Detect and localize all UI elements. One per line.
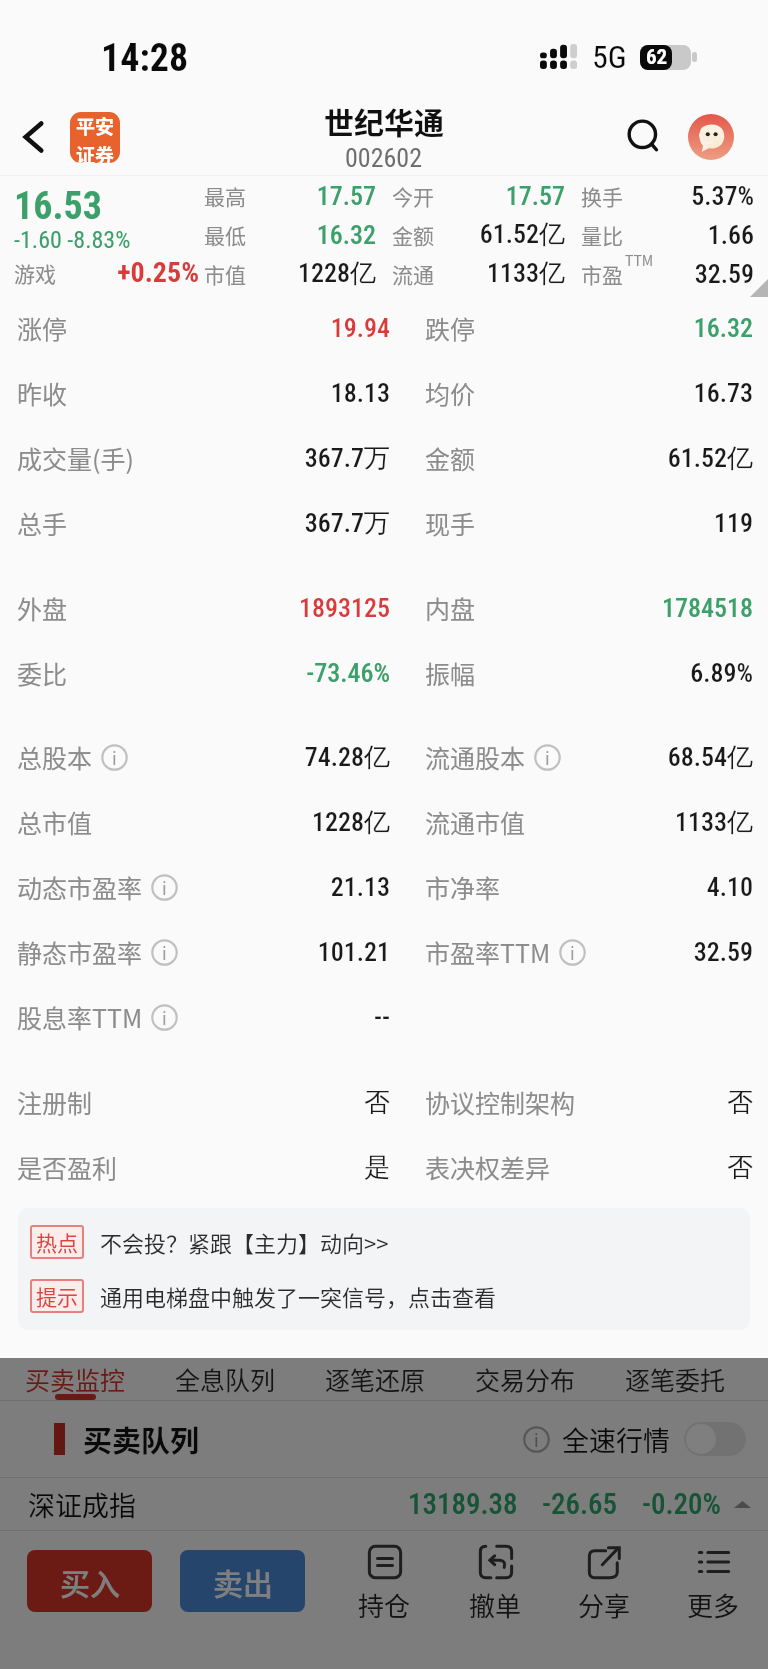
staticText: 32.59 <box>586 937 753 967</box>
staticText: 金额 <box>392 220 434 250</box>
staticText: 是否盈利 <box>17 1149 118 1185</box>
staticText: 涨停 <box>17 310 68 346</box>
staticText: 1.66 <box>623 220 754 250</box>
staticText: 全速行情 <box>562 1420 670 1459</box>
button[interactable]: 持仓 <box>342 1543 426 1625</box>
button[interactable]: 买卖监控 <box>0 1358 150 1401</box>
button[interactable]: 提示 <box>18 1279 750 1313</box>
staticText: i <box>545 745 550 770</box>
staticText: i <box>534 1427 539 1452</box>
button[interactable]: 全息队列 <box>150 1358 300 1401</box>
button[interactable]: 逐笔还原 <box>300 1358 450 1401</box>
staticText: 内盘 <box>425 590 476 626</box>
staticText: 市盈 <box>581 259 623 289</box>
button[interactable]: Toggle full speed quotes <box>684 1422 746 1456</box>
staticText: 16.53 <box>14 184 102 229</box>
staticText: -- <box>178 1002 390 1032</box>
staticText: 市净率 <box>425 869 501 905</box>
staticText: 18.13 <box>68 378 390 408</box>
button[interactable]: Profile <box>688 114 734 160</box>
staticText: 总股本 <box>17 739 93 775</box>
staticText: 协议控制架构 <box>425 1084 576 1120</box>
button[interactable]: 撤单 <box>453 1543 537 1625</box>
staticText: 否 <box>93 1086 390 1119</box>
staticText: 68.54亿 <box>561 741 753 774</box>
staticText: 61.52亿 <box>476 442 753 475</box>
button[interactable]: Search <box>623 115 667 159</box>
staticText: 101.21 <box>178 937 390 967</box>
staticText: 分享 <box>578 1586 631 1624</box>
staticText: 表决权差异 <box>425 1149 551 1185</box>
button[interactable]: Back <box>8 111 60 163</box>
staticText: 367.7万 <box>134 442 390 475</box>
button[interactable]: 热点 <box>18 1225 750 1259</box>
staticText: 14:28 <box>101 36 189 81</box>
button[interactable]: 交易分布 <box>450 1358 600 1401</box>
staticText: 平安 <box>76 112 115 140</box>
staticText: 最低 <box>204 220 246 250</box>
staticText: 总手 <box>17 505 68 541</box>
staticText: 均价 <box>425 375 476 411</box>
staticText: 通用电梯盘中触发了一突信号，点击查看 <box>100 1280 497 1312</box>
staticText: 16.73 <box>476 378 753 408</box>
staticText: 热点 <box>36 1227 78 1257</box>
staticText: 5.37% <box>623 181 754 211</box>
staticText: i <box>112 745 117 770</box>
button[interactable]: 分享 <box>562 1543 646 1625</box>
button[interactable]: 卖出 <box>180 1550 305 1612</box>
staticText: 1133亿 <box>526 806 753 839</box>
staticText: 全息队列 <box>175 1361 276 1397</box>
staticText: 今开 <box>392 181 434 211</box>
staticText: -73.46% <box>68 658 390 688</box>
staticText: 否 <box>576 1086 753 1119</box>
staticText: 16.32 <box>476 313 753 343</box>
staticText: 流通股本 <box>425 739 526 775</box>
staticText: 动态市盈率 <box>17 869 143 905</box>
staticText: 世纪华通 <box>324 99 444 142</box>
staticText: i <box>570 940 575 965</box>
staticText: 19.94 <box>68 313 390 343</box>
staticText: 1133亿 <box>434 257 565 290</box>
staticText: 1784518 <box>476 593 753 623</box>
staticText: 1228亿 <box>93 806 390 839</box>
staticText: 119 <box>476 508 753 538</box>
staticText: 现手 <box>425 505 476 541</box>
staticText: 否 <box>551 1151 753 1184</box>
staticText: 提示 <box>36 1281 78 1311</box>
staticText: 6.89% <box>476 658 753 688</box>
button[interactable]: 逐笔委托 <box>600 1358 750 1401</box>
staticText: 是 <box>118 1151 390 1184</box>
staticText: 61.52亿 <box>434 218 565 251</box>
staticText: 17.57 <box>246 181 376 211</box>
staticText: 游戏 <box>14 258 56 288</box>
staticText: 股息率TTM <box>17 999 143 1035</box>
staticText: 62 <box>646 45 668 70</box>
staticText: 5G <box>592 38 627 76</box>
staticText: i <box>162 1005 167 1030</box>
staticText: 002602 <box>345 143 423 173</box>
staticText: -0.20% <box>642 1487 721 1521</box>
button[interactable]: 更多 <box>671 1543 755 1625</box>
staticText: 不会投？紧跟【主力】动向>> <box>100 1226 389 1258</box>
staticText: -1.60 -8.83% <box>14 226 131 254</box>
button[interactable]: 平安 <box>70 112 120 163</box>
staticText: 流通 <box>392 259 434 289</box>
staticText: 证券 <box>76 141 115 163</box>
button[interactable]: 买入 <box>27 1550 152 1612</box>
staticText: 换手 <box>581 181 623 211</box>
staticText: i <box>162 875 167 900</box>
staticText: 367.7万 <box>68 507 390 540</box>
staticText: 13189.38 <box>408 1487 518 1521</box>
staticText: 流通市值 <box>425 804 526 840</box>
staticText: 32.59 <box>623 259 754 289</box>
staticText: 买卖监控 <box>25 1361 126 1397</box>
staticText: 74.28亿 <box>128 741 390 774</box>
staticText: +0.25% <box>56 256 199 289</box>
staticText: 金额 <box>425 440 476 476</box>
staticText: 量比 <box>581 220 623 250</box>
staticText: 4.10 <box>501 872 753 902</box>
staticText: 委比 <box>17 655 68 691</box>
staticText: 振幅 <box>425 655 476 691</box>
staticText: 21.13 <box>178 872 390 902</box>
staticText: 卖出 <box>213 1560 273 1603</box>
